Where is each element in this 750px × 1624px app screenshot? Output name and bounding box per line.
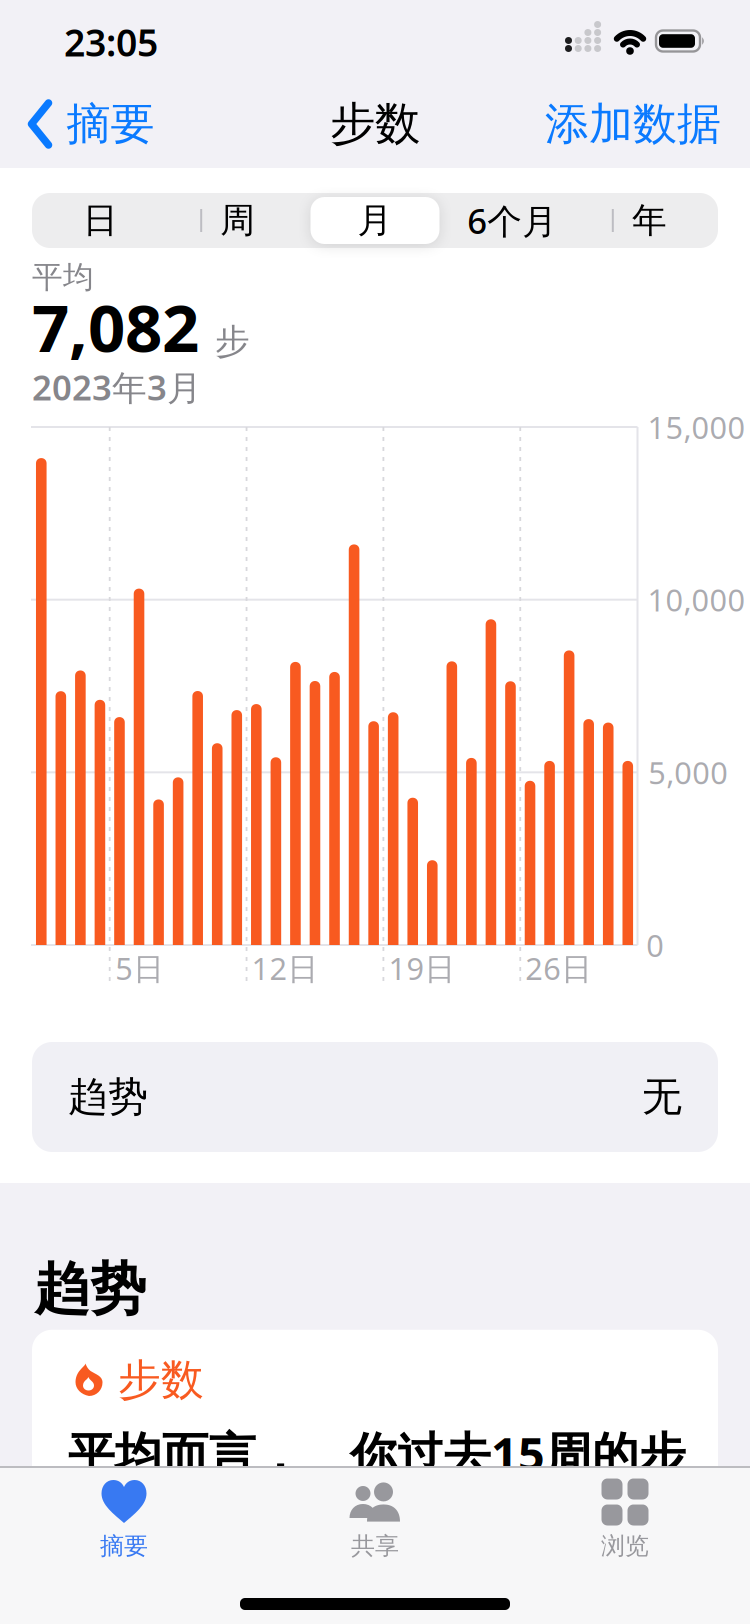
staticText: 19日 [388, 948, 455, 988]
staticText: 添加数据 [545, 97, 721, 151]
staticText: 7,082 [32, 283, 199, 370]
staticText: 15,000 [647, 407, 745, 447]
staticText: 步 [215, 320, 250, 363]
button[interactable]: 日 [32, 193, 169, 248]
staticText: 0 [646, 925, 664, 965]
staticText: 平均 [32, 258, 94, 296]
staticText: 共享 [351, 1531, 399, 1561]
staticText: 日 [83, 199, 118, 242]
button[interactable]: 添加数据 [545, 97, 721, 151]
staticText: 2023年3月 [32, 364, 202, 410]
staticText: 摘要 [100, 1531, 148, 1561]
staticText: 趋势 [34, 1255, 146, 1324]
button[interactable]: 趋势 [32, 1042, 718, 1152]
staticText: 5,000 [648, 752, 728, 793]
staticText: 浏览 [601, 1531, 649, 1561]
button[interactable]: 年 [581, 193, 718, 248]
staticText: 10,000 [647, 579, 745, 620]
staticText: 趋势 [68, 1072, 148, 1121]
button[interactable]: 步数 [32, 1330, 718, 1573]
staticText: 周 [220, 199, 255, 242]
button[interactable]: 6个月 [444, 193, 581, 248]
staticText: 5日 [115, 948, 164, 988]
staticText: 6个月 [467, 197, 557, 243]
button[interactable]: 浏览 [525, 1476, 725, 1572]
staticText: 12日 [252, 948, 319, 988]
button[interactable]: 周 [169, 193, 306, 248]
staticText: 步数 [118, 1354, 204, 1406]
staticText: 摘要 [66, 97, 154, 151]
staticText: 平均而言， 你过去15周的步数呈下降趋势。 [68, 1422, 686, 1541]
staticText: 步数 [330, 96, 420, 152]
button[interactable]: 摘要 [27, 97, 154, 151]
button[interactable]: 月 [306, 193, 444, 248]
staticText: 无 [642, 1072, 682, 1121]
button[interactable]: 共享 [275, 1476, 475, 1572]
staticText: 年 [632, 199, 667, 242]
staticText: 23:05 [64, 17, 158, 67]
staticText: 26日 [525, 948, 592, 988]
staticText: 月 [357, 199, 392, 242]
button[interactable]: 摘要 [24, 1476, 224, 1572]
